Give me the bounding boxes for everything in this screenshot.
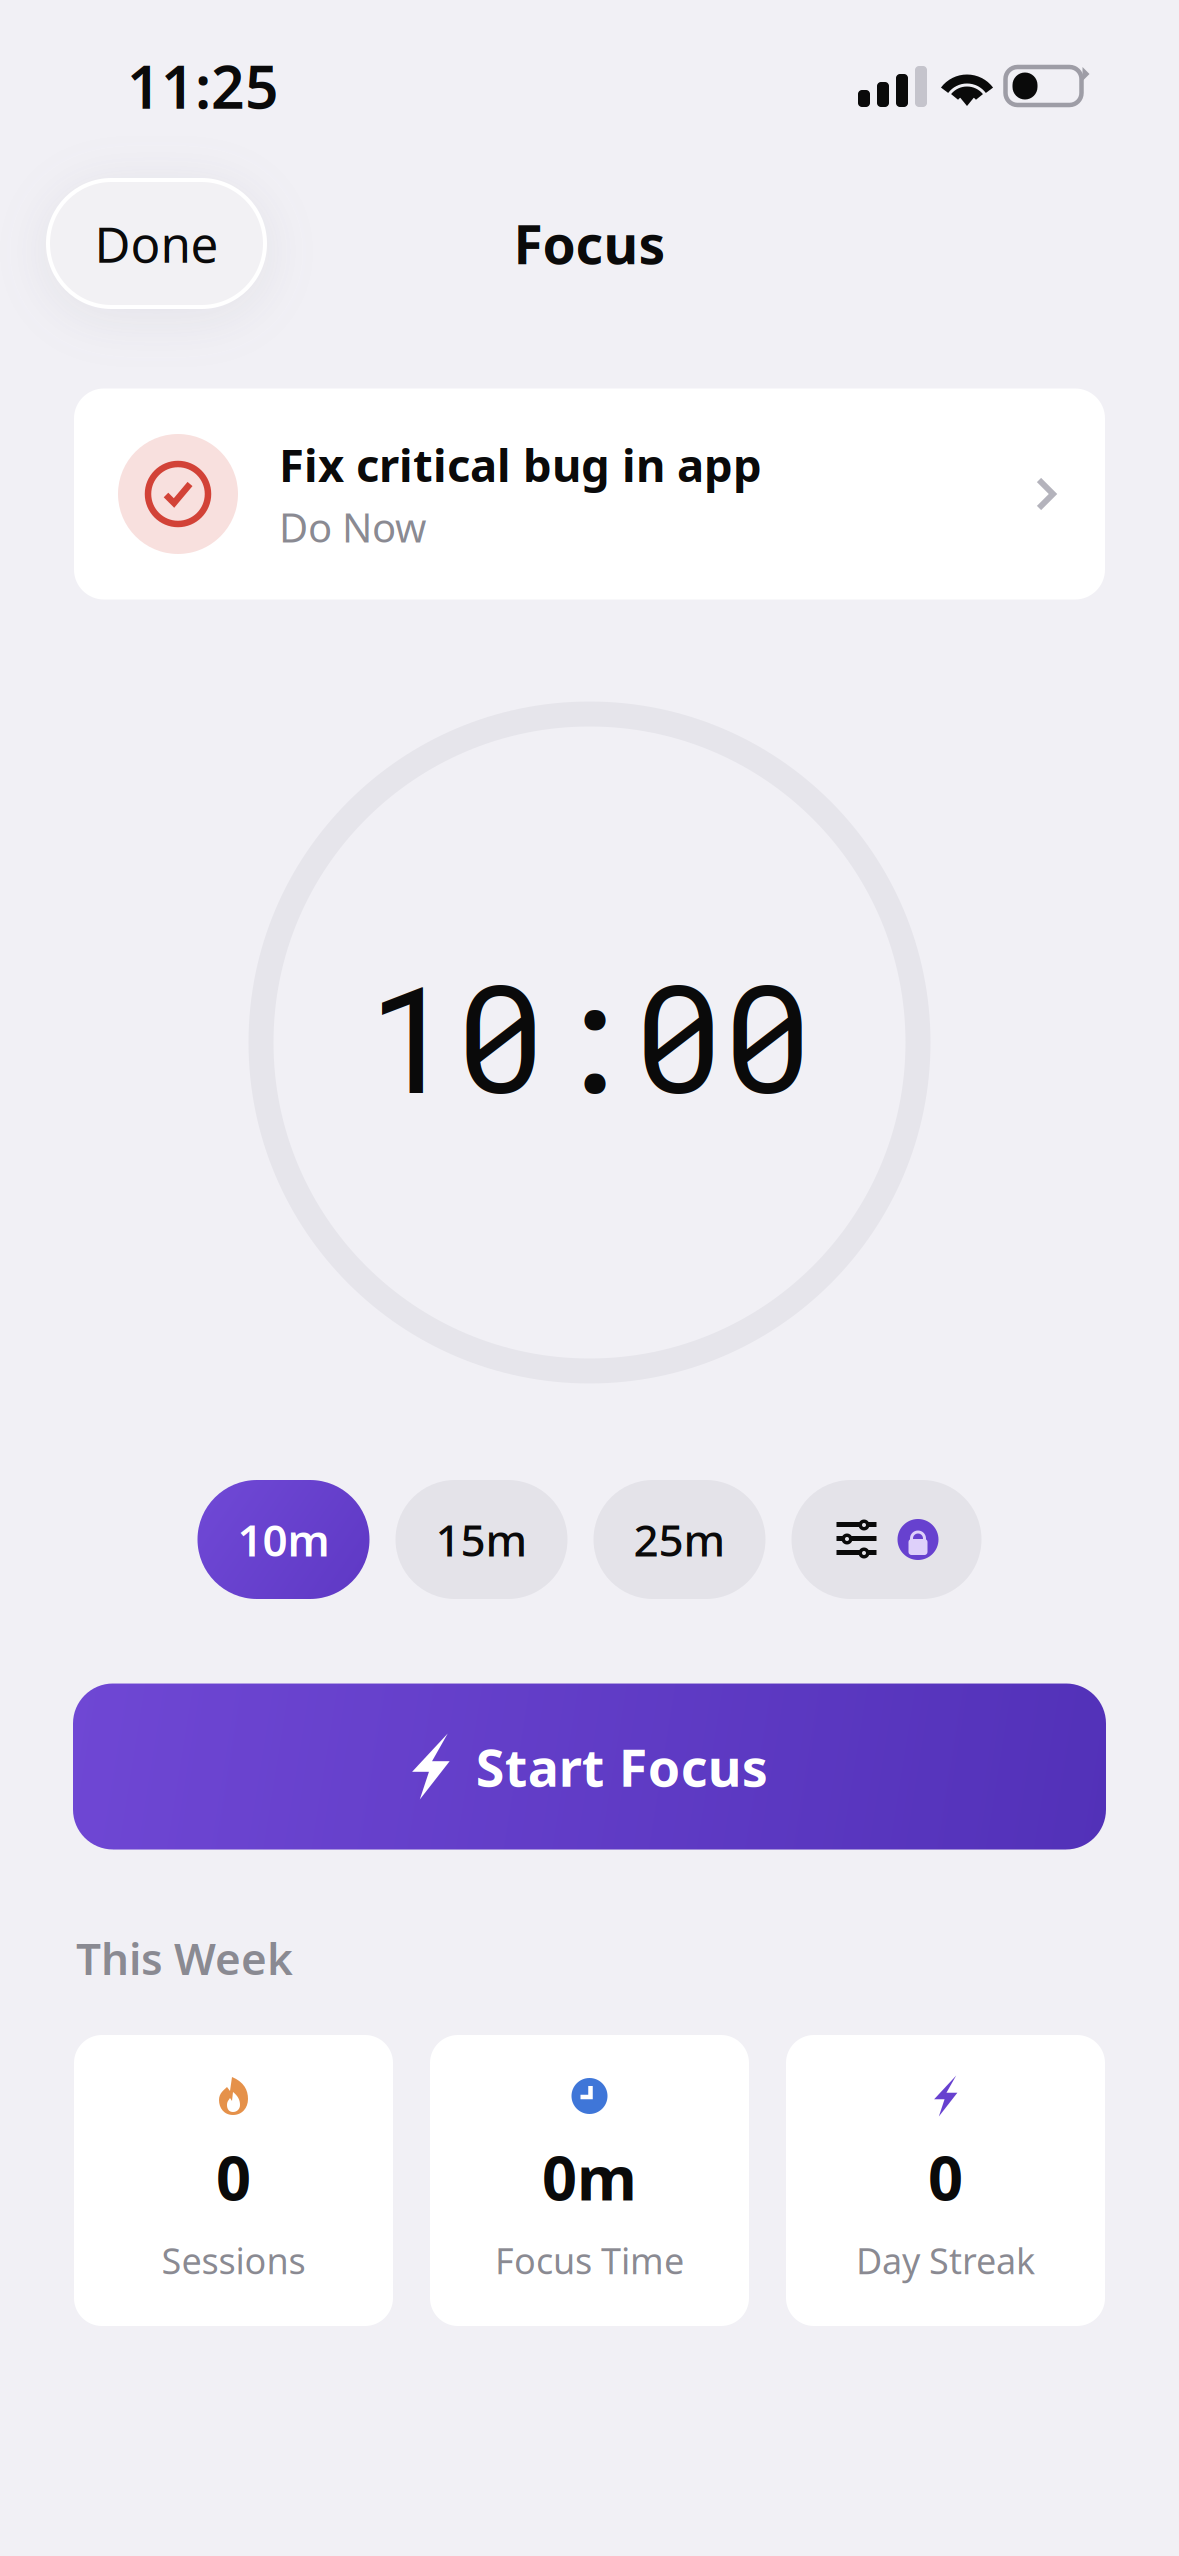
- staticText: 11:25: [127, 47, 279, 125]
- staticText: Start Focus: [476, 1732, 768, 1801]
- staticText: This Week: [76, 1929, 293, 1987]
- staticText: Day Streak: [856, 2236, 1035, 2284]
- staticText: Done: [94, 211, 218, 276]
- staticText: Do Now: [279, 500, 426, 554]
- staticText: 10:00: [367, 938, 812, 1133]
- button[interactable]: Fix critical bug in app: [74, 388, 1105, 599]
- staticText: Focus: [513, 208, 665, 279]
- button[interactable]: 10m: [197, 1480, 369, 1599]
- button[interactable]: Done: [48, 180, 265, 307]
- staticText: Sessions: [161, 2236, 305, 2284]
- button[interactable]: 15m: [395, 1480, 567, 1599]
- staticText: 15m: [435, 1510, 527, 1569]
- staticText: 0: [216, 2136, 251, 2217]
- button[interactable]: Start Focus: [73, 1683, 1106, 1849]
- staticText: 10m: [237, 1510, 329, 1569]
- staticText: Focus Time: [495, 2236, 684, 2284]
- button[interactable]: Custom duration and lock settings: [791, 1480, 981, 1599]
- staticText: 0m: [542, 2136, 637, 2217]
- staticText: 25m: [633, 1510, 725, 1569]
- staticText: Fix critical bug in app: [279, 434, 762, 494]
- staticText: 0: [928, 2136, 963, 2217]
- button[interactable]: 25m: [593, 1480, 765, 1599]
